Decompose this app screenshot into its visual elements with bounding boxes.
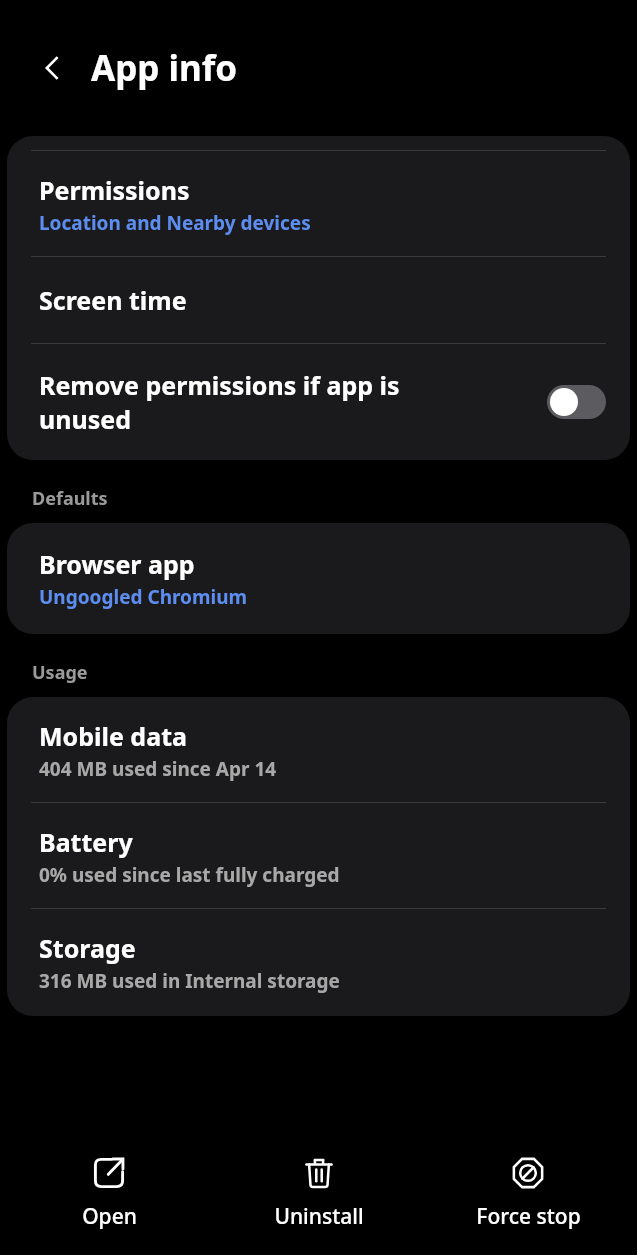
staticText: Location and Nearby devices xyxy=(39,210,311,236)
button[interactable]: Back xyxy=(25,41,79,95)
button[interactable]: Browser app xyxy=(7,523,630,634)
other: Force stop xyxy=(511,1156,545,1190)
staticText: Remove permissions if app is unused xyxy=(39,368,400,436)
staticText: 0% used since last fully charged xyxy=(39,862,340,888)
button[interactable]: Permissions xyxy=(7,151,630,256)
staticText: Uninstall xyxy=(274,1202,364,1231)
staticText: Open xyxy=(82,1202,137,1231)
staticText: 404 MB used since Apr 14 xyxy=(39,756,277,782)
button[interactable]: Force stop xyxy=(428,1146,628,1241)
button[interactable]: Mobile data xyxy=(7,697,630,802)
staticText: Battery xyxy=(39,825,133,859)
other: Open xyxy=(92,1156,126,1190)
button[interactable]: Uninstall xyxy=(219,1146,419,1241)
staticText: Ungoogled Chromium xyxy=(39,584,248,610)
button[interactable]: Open xyxy=(9,1146,209,1241)
staticText: Defaults xyxy=(32,486,108,511)
staticText: Screen time xyxy=(39,283,187,317)
staticText: App info xyxy=(91,44,238,92)
staticText: Force stop xyxy=(476,1202,581,1231)
staticText: 316 MB used in Internal storage xyxy=(39,968,340,994)
staticText: Mobile data xyxy=(39,719,187,753)
button[interactable]: Remove permissions if app is unused xyxy=(547,385,606,419)
button[interactable]: Screen time xyxy=(7,257,630,343)
staticText: Usage xyxy=(32,660,88,685)
other: Uninstall xyxy=(302,1156,336,1190)
staticText: Permissions xyxy=(39,173,190,207)
staticText: Storage xyxy=(39,931,136,965)
button[interactable]: Storage xyxy=(7,909,630,1016)
button[interactable]: Battery xyxy=(7,803,630,908)
button[interactable]: Remove permissions if app is unused xyxy=(7,344,630,460)
staticText: Browser app xyxy=(39,547,195,581)
